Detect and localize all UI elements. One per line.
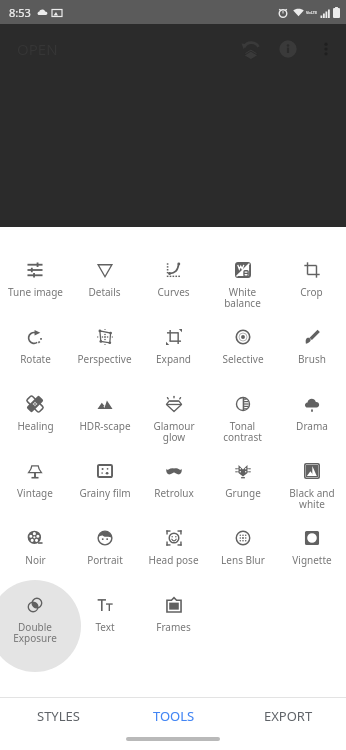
staticText: Selective xyxy=(222,352,264,366)
button[interactable]: Lens Blur xyxy=(208,522,277,589)
staticText: EXPORT xyxy=(264,707,313,725)
staticText: Black and white xyxy=(289,486,335,511)
staticText: Text xyxy=(95,620,115,634)
button[interactable]: Glamour glow xyxy=(139,388,208,455)
staticText: Lens Blur xyxy=(221,553,265,567)
button[interactable]: Vignette xyxy=(277,522,346,589)
staticText: Brush xyxy=(298,352,326,366)
staticText: Tonal contrast xyxy=(223,419,262,444)
staticText: Crop xyxy=(300,285,323,299)
button[interactable]: Healing xyxy=(0,388,70,455)
button[interactable]: Tune image xyxy=(0,254,70,321)
staticText: HDR-scape xyxy=(79,419,131,433)
staticText: OPEN xyxy=(17,39,58,59)
button[interactable]: Details xyxy=(70,254,139,321)
button[interactable]: Portrait xyxy=(70,522,139,589)
button[interactable]: TOOLS xyxy=(116,698,231,733)
button[interactable]: Tonal contrast xyxy=(208,388,277,455)
button[interactable]: Head pose xyxy=(139,522,208,589)
staticText: Drama xyxy=(296,419,328,433)
button[interactable]: Drama xyxy=(277,388,346,455)
button[interactable]: White balance xyxy=(208,254,277,321)
staticText: Noir xyxy=(25,553,46,567)
button[interactable]: Black and white xyxy=(277,455,346,522)
staticText: Tune image xyxy=(8,285,63,299)
button[interactable]: Crop xyxy=(277,254,346,321)
button[interactable]: Double Exposure xyxy=(0,589,70,656)
staticText: Double Exposure xyxy=(13,620,57,645)
staticText: Curves xyxy=(157,285,190,299)
button[interactable]: Curves xyxy=(139,254,208,321)
staticText: White balance xyxy=(224,285,261,310)
staticText: Vignette xyxy=(292,553,332,567)
button[interactable]: Expand xyxy=(139,321,208,388)
staticText: Portrait xyxy=(87,553,123,567)
button[interactable]: STYLES xyxy=(0,698,116,733)
staticText: Retrolux xyxy=(154,486,194,500)
staticText: Head pose xyxy=(148,553,199,567)
button[interactable]: Brush xyxy=(277,321,346,388)
staticText: Vintage xyxy=(17,486,53,500)
staticText: Expand xyxy=(156,352,191,366)
staticText: 8:53 xyxy=(9,5,31,20)
button[interactable]: Perspective xyxy=(70,321,139,388)
staticText: Grunge xyxy=(225,486,261,500)
staticText: Grainy film xyxy=(79,486,131,500)
staticText: Details xyxy=(88,285,121,299)
staticText: STYLES xyxy=(37,707,80,725)
staticText: Healing xyxy=(17,419,54,433)
button[interactable]: Rotate xyxy=(0,321,70,388)
button[interactable]: EXPORT xyxy=(231,698,346,733)
button[interactable]: Vintage xyxy=(0,455,70,522)
staticText: Glamour glow xyxy=(153,419,195,444)
button[interactable]: Retrolux xyxy=(139,455,208,522)
button[interactable]: Noir xyxy=(0,522,70,589)
staticText: Frames xyxy=(156,620,191,634)
button[interactable]: Text xyxy=(70,589,139,656)
button[interactable]: Frames xyxy=(139,589,208,656)
staticText: Rotate xyxy=(20,352,51,366)
button[interactable]: Grainy film xyxy=(70,455,139,522)
staticText: VoLTE xyxy=(306,10,318,15)
button[interactable]: Selective xyxy=(208,321,277,388)
button[interactable]: HDR-scape xyxy=(70,388,139,455)
staticText: Perspective xyxy=(77,352,132,366)
staticText: TOOLS xyxy=(153,707,195,725)
button[interactable]: Grunge xyxy=(208,455,277,522)
button[interactable]: Undo xyxy=(231,30,269,68)
button[interactable]: Info xyxy=(269,30,307,68)
